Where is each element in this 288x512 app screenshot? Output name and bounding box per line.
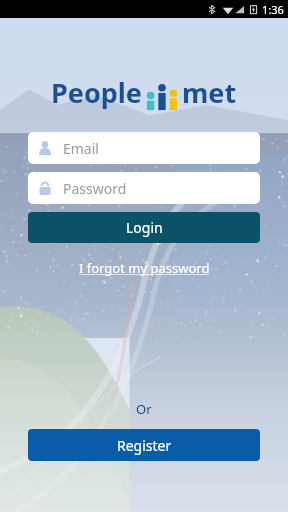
button[interactable]: Password bbox=[28, 172, 260, 204]
staticText: People bbox=[51, 74, 142, 111]
button[interactable]: I forgot my password bbox=[77, 257, 212, 279]
staticText: Register bbox=[117, 436, 172, 455]
staticText: I forgot my password bbox=[79, 259, 210, 277]
button[interactable]: Login bbox=[28, 212, 260, 243]
button[interactable]: Register bbox=[28, 429, 260, 461]
staticText: Login bbox=[126, 218, 163, 237]
staticText: Or bbox=[136, 400, 152, 418]
staticText: 1:36 bbox=[262, 2, 284, 17]
staticText: Email bbox=[63, 139, 99, 158]
staticText: Password bbox=[63, 179, 127, 198]
staticText: met bbox=[182, 74, 237, 111]
button[interactable]: Email bbox=[28, 132, 260, 164]
